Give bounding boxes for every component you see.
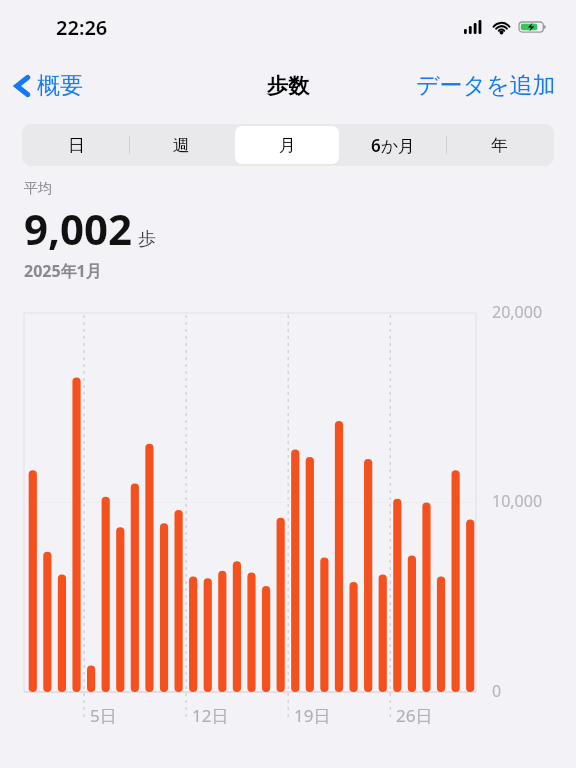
staticText: 19日 — [294, 704, 331, 727]
staticText: データを追加 — [416, 71, 556, 100]
staticText: 22:26 — [56, 14, 108, 41]
staticText: 2025年1月 — [24, 260, 102, 282]
staticText: 月 — [279, 135, 296, 156]
staticText: 6か月 — [371, 134, 416, 157]
staticText: 日 — [68, 135, 85, 156]
button[interactable]: 週 — [130, 126, 233, 164]
staticText: 年 — [491, 135, 508, 156]
staticText: 20,000 — [492, 301, 543, 323]
button[interactable]: 月 — [235, 126, 339, 164]
button[interactable]: 年 — [447, 126, 551, 164]
staticText: 概要 — [37, 71, 83, 100]
button[interactable]: 日 — [25, 126, 128, 164]
button[interactable]: 概要 — [10, 67, 87, 104]
staticText: 5日 — [90, 704, 117, 727]
staticText: 週 — [173, 135, 190, 156]
staticText: 9,002 — [24, 200, 133, 257]
button[interactable]: データを追加 — [412, 67, 560, 104]
staticText: 10,000 — [492, 490, 543, 512]
button[interactable]: 6か月 — [341, 126, 445, 164]
staticText: 0 — [492, 680, 502, 702]
staticText: 平均 — [24, 180, 52, 198]
staticText: 26日 — [396, 704, 433, 727]
staticText: 歩数 — [267, 73, 309, 99]
staticText: 12日 — [192, 704, 229, 727]
staticText: 歩 — [138, 228, 156, 251]
